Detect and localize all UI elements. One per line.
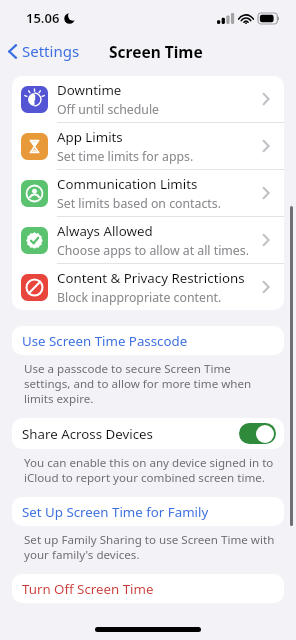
button[interactable]: Use Screen Time Passcode [12, 326, 284, 355]
staticText: Set time limits for apps. [57, 148, 194, 165]
staticText: Communication Limits [57, 175, 198, 193]
button[interactable]: Downtime [12, 76, 284, 122]
button[interactable]: Share Across Devices [12, 418, 284, 449]
button[interactable]: Always Allowed [12, 217, 284, 263]
staticText: Set limits based on contacts. [57, 195, 221, 212]
staticText: Off until schedule [57, 101, 160, 118]
staticText: Content & Privacy Restrictions [57, 269, 245, 287]
staticText: You can enable this on any device signed… [24, 455, 278, 486]
staticText: Downtime [57, 81, 122, 99]
button[interactable]: Content & Privacy Restrictions [12, 264, 284, 310]
button[interactable]: Settings [0, 37, 88, 65]
button[interactable]: Turn Off Screen Time [12, 574, 284, 603]
staticText: Share Across Devices [22, 425, 153, 443]
staticText: 15.06 [26, 9, 60, 27]
staticText: Settings [22, 41, 80, 61]
staticText: Set Up Screen Time for Family [22, 503, 209, 521]
staticText: Turn Off Screen Time [22, 580, 154, 598]
staticText: Choose apps to allow at all times. [57, 242, 249, 259]
staticText: App Limits [57, 128, 123, 146]
staticText: Use Screen Time Passcode [22, 332, 188, 350]
staticText: Set up Family Sharing to use Screen Time… [24, 532, 278, 563]
button[interactable]: App Limits [12, 123, 284, 169]
button[interactable]: Set Up Screen Time for Family [12, 497, 284, 526]
other: Share Across Devices toggle, on [239, 423, 276, 444]
staticText: Use a passcode to secure Screen Time set… [24, 361, 278, 407]
staticText: Always Allowed [57, 222, 153, 240]
staticText: Screen Time [109, 41, 203, 62]
staticText: Block inappropriate content. [57, 289, 222, 306]
button[interactable]: Communication Limits [12, 170, 284, 216]
